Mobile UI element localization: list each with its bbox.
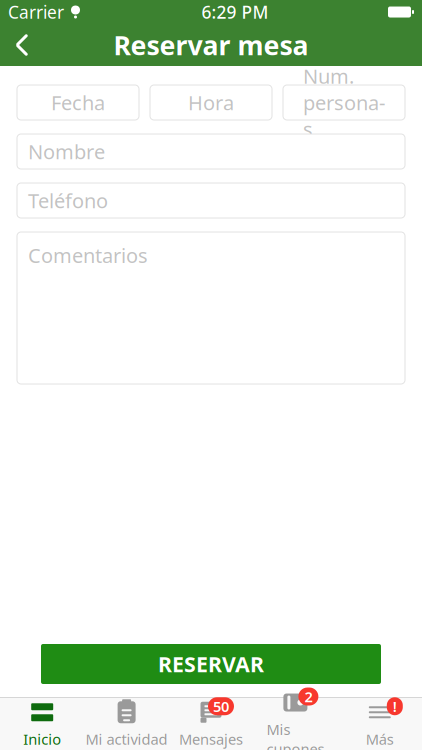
staticText: Reservar mesa [113,27,308,63]
staticText: Mensajes [179,729,243,749]
staticText: RESERVAR [158,650,264,678]
button[interactable]: 50 [169,698,253,750]
staticText: ! [393,696,397,716]
button[interactable]: Teléfono [17,183,405,218]
staticText: 6:29 PM [201,0,268,23]
button[interactable]: Comentarios [17,232,405,384]
button[interactable]: RESERVAR [41,644,381,684]
button[interactable]: 2 [253,698,338,750]
staticText: 2 [304,687,312,706]
staticText: Mi actividad [86,729,168,749]
staticText: Num. personas [303,63,385,142]
staticText: Inicio [23,729,61,749]
button[interactable]: ! [338,698,422,750]
staticText: Hora [188,89,234,116]
button[interactable]: Hora [150,85,272,120]
staticText: Nombre [28,138,105,165]
staticText: Fecha [51,89,105,116]
staticText: Más [366,729,394,749]
staticText: 50 [213,696,229,716]
staticText: Carrier [8,0,64,23]
staticText: Teléfono [28,187,108,214]
button[interactable]: Mi actividad [84,698,169,750]
button[interactable]: Nombre [17,134,405,169]
button[interactable]: Back [0,24,44,66]
button[interactable]: Fecha [17,85,139,120]
staticText: Mis cupones [266,719,324,750]
button[interactable]: Num. personas [283,85,405,120]
staticText: Comentarios [28,242,148,269]
button[interactable]: Inicio [0,698,84,750]
